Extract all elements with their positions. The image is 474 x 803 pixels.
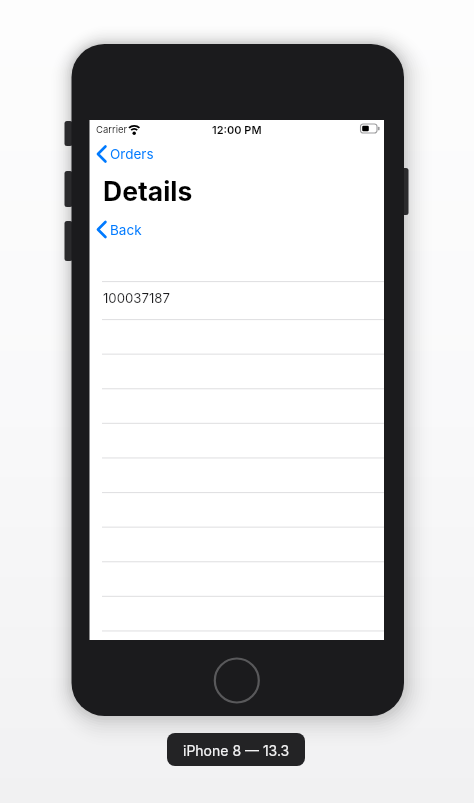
button[interactable] [215, 659, 259, 703]
button[interactable]: Orders [94, 144, 154, 164]
staticText: iPhone 8 — 13.3 [183, 742, 290, 759]
staticText: Details [103, 175, 193, 207]
button[interactable]: Back [94, 220, 144, 240]
staticText: Back [110, 222, 142, 238]
staticText: 100037187 [103, 290, 170, 306]
staticText: Carrier [96, 124, 128, 135]
button[interactable]: 100037187 [90, 281, 385, 319]
staticText: Orders [110, 146, 154, 162]
staticText: 12:00 PM [212, 123, 262, 136]
